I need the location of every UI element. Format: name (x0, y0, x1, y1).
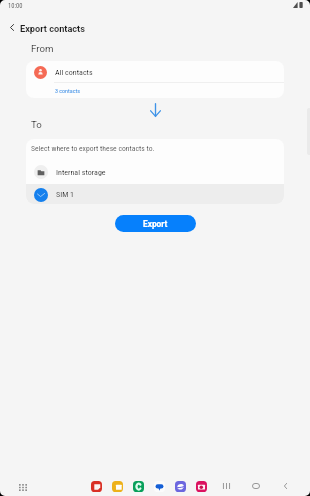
button[interactable]: Navigate up (2, 17, 22, 37)
staticText: 3 contacts (55, 87, 80, 94)
button[interactable]: App (175, 481, 186, 492)
button[interactable]: App (112, 481, 123, 492)
button[interactable]: Home (250, 480, 262, 492)
button[interactable]: Apps (15, 479, 31, 495)
button[interactable]: SIM 1 (26, 184, 284, 204)
staticText: Export contacts (20, 23, 85, 34)
staticText: 10:00 (8, 2, 23, 10)
button[interactable]: App (133, 481, 144, 492)
button[interactable]: Back (279, 480, 291, 492)
button[interactable]: Internal storage (26, 160, 284, 184)
staticText: To (31, 119, 42, 130)
staticText: Export (143, 219, 168, 229)
button[interactable]: App (91, 481, 102, 492)
button[interactable]: App (196, 481, 207, 492)
staticText: From (31, 43, 54, 54)
staticText: All contacts (55, 68, 93, 77)
staticText: Select where to export these contacts to… (31, 144, 155, 153)
button[interactable]: All contacts (26, 61, 284, 83)
button[interactable]: App (154, 481, 165, 492)
staticText: SIM 1 (56, 190, 74, 199)
staticText: Internal storage (56, 168, 106, 177)
button[interactable]: Export (115, 215, 196, 232)
button[interactable]: Recents (220, 480, 232, 492)
